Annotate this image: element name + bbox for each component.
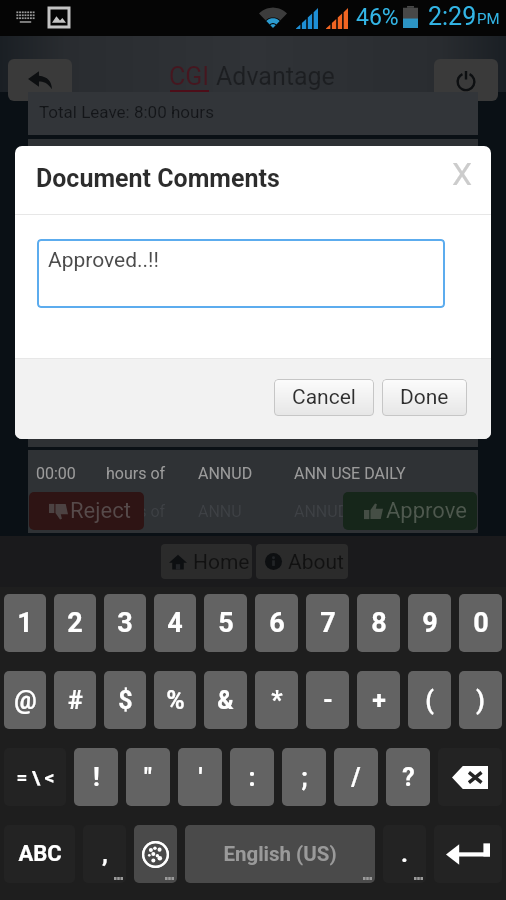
button[interactable]: 4 bbox=[154, 594, 196, 652]
staticText: CGI bbox=[169, 62, 210, 91]
staticText: Document Comments bbox=[36, 164, 280, 193]
staticText: 0 bbox=[473, 607, 489, 639]
staticText: Advantage bbox=[216, 62, 335, 91]
button[interactable]: ? bbox=[386, 748, 430, 806]
button[interactable]: = \ < bbox=[4, 748, 66, 806]
other: Change language bbox=[142, 841, 169, 868]
staticText: ! bbox=[93, 763, 100, 792]
button[interactable]: $ bbox=[104, 671, 146, 729]
staticText: 3 bbox=[117, 607, 133, 639]
staticText: 7 bbox=[320, 607, 336, 639]
staticText: - bbox=[323, 686, 333, 715]
staticText: ANNU bbox=[198, 502, 242, 521]
button[interactable]: Change language bbox=[134, 825, 177, 883]
button[interactable]: ! bbox=[74, 748, 118, 806]
button[interactable]: Enter bbox=[434, 825, 502, 883]
staticText: ANNUD bbox=[294, 502, 349, 521]
staticText: 6 bbox=[269, 607, 285, 639]
staticText: PM bbox=[477, 10, 500, 28]
button[interactable]: " bbox=[126, 748, 170, 806]
button[interactable]: 7 bbox=[306, 594, 349, 652]
staticText: , bbox=[102, 840, 108, 868]
button[interactable]: 0 bbox=[459, 594, 502, 652]
button[interactable]: ; bbox=[282, 748, 326, 806]
button[interactable]: 8 bbox=[357, 594, 400, 652]
staticText: ' bbox=[198, 763, 203, 792]
staticText: % bbox=[166, 686, 185, 715]
staticText: hours of bbox=[106, 502, 166, 521]
staticText: . bbox=[401, 840, 408, 868]
staticText: # bbox=[68, 686, 83, 715]
staticText: : bbox=[248, 763, 256, 792]
staticText: About bbox=[288, 550, 344, 575]
button[interactable]: Cancel bbox=[274, 379, 374, 416]
staticText: Total Leave: 8:00 hours bbox=[39, 102, 214, 122]
button[interactable]: Backspace bbox=[438, 748, 502, 806]
staticText: 2:29 bbox=[428, 2, 477, 31]
staticText: Approved..!! bbox=[48, 248, 159, 273]
staticText: 00:00 bbox=[36, 502, 76, 521]
staticText: ABC bbox=[18, 841, 62, 867]
button[interactable]: * bbox=[255, 671, 298, 729]
staticText: English (US) bbox=[223, 842, 337, 866]
staticText: 5 bbox=[218, 607, 234, 639]
button[interactable]: 2 bbox=[54, 594, 96, 652]
button[interactable]: English (US) bbox=[185, 825, 375, 883]
button[interactable]: About bbox=[256, 544, 348, 579]
button[interactable]: . bbox=[383, 825, 426, 883]
button[interactable]: 9 bbox=[408, 594, 451, 652]
button[interactable]: Done bbox=[382, 379, 467, 416]
button[interactable]: Logout bbox=[434, 59, 498, 101]
staticText: ANNUD bbox=[198, 464, 253, 483]
staticText: / bbox=[351, 763, 361, 792]
button[interactable]: @ bbox=[4, 671, 46, 729]
staticText: hours of bbox=[106, 464, 166, 483]
button[interactable]: Reject bbox=[29, 492, 144, 530]
staticText: ( bbox=[425, 686, 434, 715]
staticText: @ bbox=[14, 686, 37, 715]
other: Backspace bbox=[452, 766, 488, 789]
button[interactable]: & bbox=[204, 671, 247, 729]
staticText: + bbox=[372, 686, 386, 715]
staticText: 46% bbox=[356, 4, 399, 31]
button[interactable]: Home bbox=[161, 544, 252, 579]
staticText: Approve bbox=[386, 498, 467, 524]
button[interactable]: , bbox=[83, 825, 126, 883]
staticText: Home bbox=[193, 550, 250, 575]
other: Enter bbox=[446, 840, 490, 868]
button[interactable]: ' bbox=[178, 748, 222, 806]
button[interactable]: ) bbox=[459, 671, 502, 729]
staticText: = \ < bbox=[16, 766, 55, 788]
staticText: ANN USE DAILY bbox=[294, 464, 406, 483]
staticText: 8 bbox=[371, 607, 387, 639]
staticText: ) bbox=[476, 686, 485, 715]
staticText: Reject bbox=[70, 498, 131, 524]
button[interactable]: Back bbox=[8, 59, 72, 101]
staticText: ; bbox=[301, 763, 308, 792]
button[interactable]: / bbox=[334, 748, 378, 806]
button[interactable]: Approved..!! bbox=[37, 239, 445, 308]
staticText: 00:00 bbox=[36, 464, 76, 483]
staticText: X bbox=[452, 155, 473, 193]
button[interactable]: ABC bbox=[4, 825, 75, 883]
button[interactable]: + bbox=[357, 671, 400, 729]
button[interactable]: % bbox=[154, 671, 196, 729]
button[interactable]: 5 bbox=[204, 594, 247, 652]
button[interactable]: 6 bbox=[255, 594, 298, 652]
button[interactable]: - bbox=[306, 671, 349, 729]
button[interactable]: Approve bbox=[343, 492, 477, 530]
button[interactable]: # bbox=[54, 671, 96, 729]
staticText: & bbox=[217, 686, 234, 715]
staticText: 9 bbox=[422, 607, 438, 639]
staticText: 4 bbox=[167, 607, 183, 639]
staticText: Cancel bbox=[292, 385, 356, 410]
button[interactable]: 3 bbox=[104, 594, 146, 652]
button[interactable]: : bbox=[230, 748, 274, 806]
button[interactable]: ( bbox=[408, 671, 451, 729]
button[interactable]: 1 bbox=[4, 594, 46, 652]
staticText: Done bbox=[400, 385, 449, 410]
button[interactable]: Close bbox=[440, 152, 484, 196]
staticText: 2 bbox=[67, 607, 83, 639]
staticText: 1 bbox=[17, 607, 33, 639]
staticText: * bbox=[271, 686, 283, 715]
